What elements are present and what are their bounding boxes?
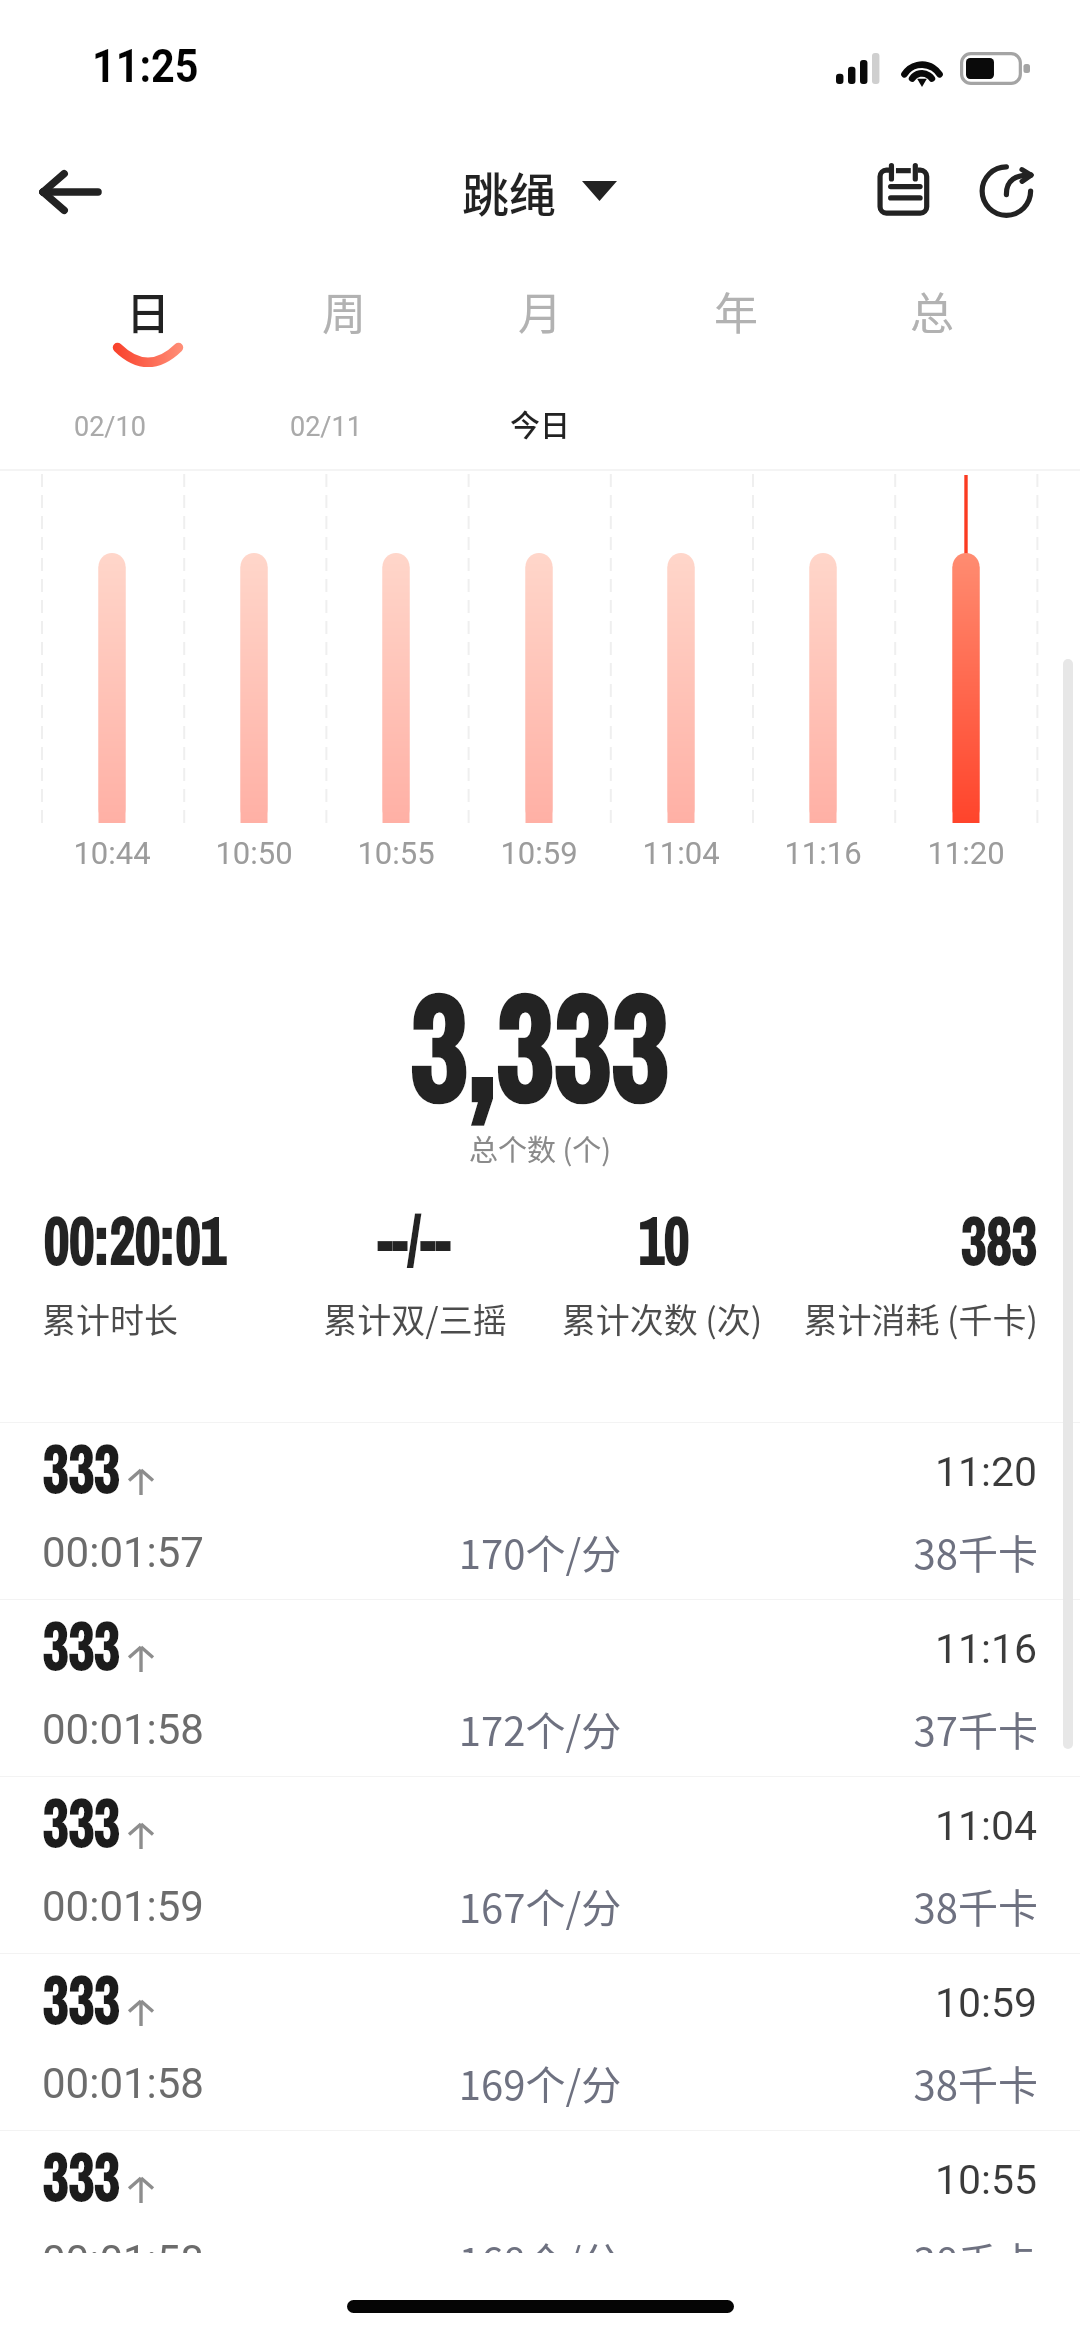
staticText: 累计次数 (次) xyxy=(462,1294,862,1343)
staticText: 38千卡 xyxy=(638,1523,1038,1581)
staticText: 172个/分 xyxy=(340,1700,740,1758)
staticText: 333 xyxy=(43,2131,120,2221)
staticText: 11:25 xyxy=(92,38,199,93)
button[interactable]: 周 xyxy=(246,280,442,372)
staticText: 总个数 (个) xyxy=(0,1127,1080,1169)
staticText: 10:59 xyxy=(837,1979,1037,2027)
staticText: 日 xyxy=(126,279,170,343)
button[interactable]: Back xyxy=(18,142,122,242)
staticText: 169个/分 xyxy=(340,2054,740,2112)
button[interactable]: Share xyxy=(955,142,1055,242)
staticText: 333 xyxy=(43,1777,120,1867)
staticText: 00:01:58 xyxy=(42,2059,204,2108)
staticText: 10:50 xyxy=(184,835,324,871)
staticText: 38千卡 xyxy=(638,1877,1038,1935)
staticText: 00:01:59 xyxy=(42,1882,204,1931)
staticText: 累计消耗 (千卡) xyxy=(638,1294,1038,1343)
button[interactable]: 日 xyxy=(50,280,246,372)
staticText: 02/10 xyxy=(74,411,146,443)
staticText: 37千卡 xyxy=(638,1700,1038,1758)
staticText: 11:20 xyxy=(837,1448,1037,1496)
staticText: 333 xyxy=(43,1600,120,1690)
button[interactable] xyxy=(0,1777,1080,1954)
staticText: 11:04 xyxy=(837,1802,1037,1850)
staticText: 333 xyxy=(43,1423,120,1513)
staticText: 11:04 xyxy=(611,835,751,871)
staticText: --/-- xyxy=(238,1196,590,1285)
staticText: 周 xyxy=(322,279,366,343)
staticText: 00:01:58 xyxy=(42,2236,204,2285)
staticText: 累计双/三摇 xyxy=(215,1294,615,1343)
button[interactable]: 总 xyxy=(834,280,1030,372)
staticText: 38千卡 xyxy=(638,2054,1038,2112)
button[interactable]: 跳绳 xyxy=(462,150,637,232)
staticText: 10:55 xyxy=(326,835,466,871)
button[interactable]: 年 xyxy=(638,280,834,372)
staticText: 月 xyxy=(518,279,562,343)
staticText: 11:16 xyxy=(837,1625,1037,1673)
staticText: 167个/分 xyxy=(340,1877,740,1935)
staticText: 168个/分 xyxy=(340,2231,740,2289)
button[interactable]: Records xyxy=(853,142,953,242)
staticText: 10:55 xyxy=(837,2156,1037,2204)
staticText: 10:59 xyxy=(469,835,609,871)
staticText: 11:20 xyxy=(896,835,1036,871)
staticText: 累计时长 xyxy=(42,1294,178,1343)
staticText: 10 xyxy=(488,1196,840,1285)
button[interactable]: 月 xyxy=(442,280,638,372)
staticText: 11:16 xyxy=(753,835,893,871)
button[interactable] xyxy=(0,1600,1080,1777)
staticText: 00:01:58 xyxy=(42,1705,204,1754)
staticText: 02/11 xyxy=(290,411,362,443)
button[interactable] xyxy=(0,1954,1080,2131)
staticText: 00:01:57 xyxy=(42,1528,204,1577)
staticText: 383 xyxy=(684,1196,1037,1285)
staticText: 总 xyxy=(910,279,954,343)
staticText: 333 xyxy=(43,1954,120,2044)
staticText: 10:44 xyxy=(42,835,182,871)
staticText: 跳绳 xyxy=(462,157,556,225)
staticText: 38千卡 xyxy=(638,2231,1038,2289)
button[interactable] xyxy=(0,2131,1080,2308)
staticText: 年 xyxy=(714,279,758,343)
staticText: 3,333 xyxy=(411,945,669,1147)
staticText: 170个/分 xyxy=(340,1523,740,1581)
staticText: 今日 xyxy=(510,401,570,444)
button[interactable] xyxy=(0,1423,1080,1600)
staticText: 00:20:01 xyxy=(44,1196,226,1285)
